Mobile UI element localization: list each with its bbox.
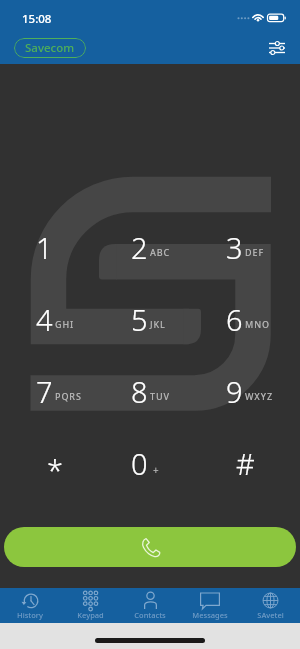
staticText: 6 bbox=[226, 300, 243, 339]
button[interactable]: SAvetel bbox=[240, 588, 300, 623]
staticText: JKL bbox=[150, 318, 166, 330]
button[interactable]: # bbox=[198, 427, 293, 499]
staticText: 2 bbox=[131, 228, 148, 267]
staticText: 1 bbox=[36, 228, 53, 267]
staticText: 9 bbox=[226, 372, 243, 411]
button[interactable]: 8 bbox=[103, 355, 198, 427]
button[interactable]: 5 bbox=[103, 283, 198, 355]
button[interactable]: 7 bbox=[7, 355, 103, 427]
staticText: GHI bbox=[55, 318, 75, 330]
button[interactable]: Keypad bbox=[60, 588, 120, 623]
staticText: 3 bbox=[226, 228, 243, 267]
staticText: DEF bbox=[245, 246, 265, 258]
staticText: PQRS bbox=[55, 390, 82, 402]
staticText: 5 bbox=[131, 300, 148, 339]
staticText: 8 bbox=[131, 372, 148, 411]
staticText: * bbox=[47, 450, 63, 489]
staticText: Messages bbox=[192, 610, 228, 620]
staticText: # bbox=[236, 444, 255, 483]
button[interactable]: * bbox=[7, 427, 103, 499]
button[interactable]: Contacts bbox=[120, 588, 180, 623]
staticText: TUV bbox=[150, 390, 170, 402]
button[interactable]: 3 bbox=[198, 211, 293, 283]
staticText: 15:08 bbox=[22, 11, 52, 27]
staticText: + bbox=[153, 463, 159, 477]
staticText: Savecom bbox=[25, 40, 75, 56]
button[interactable]: Savecom bbox=[14, 38, 86, 58]
button[interactable]: Settings bbox=[260, 32, 294, 64]
staticText: 0 bbox=[131, 444, 148, 483]
button[interactable]: 2 bbox=[103, 211, 198, 283]
button[interactable]: 9 bbox=[198, 355, 293, 427]
staticText: SAvetel bbox=[257, 610, 284, 620]
staticText: MNO bbox=[245, 318, 271, 330]
button[interactable]: Messages bbox=[180, 588, 240, 623]
button[interactable]: 6 bbox=[198, 283, 293, 355]
staticText: 7 bbox=[36, 372, 53, 411]
staticText: History bbox=[17, 610, 43, 620]
staticText: WXYZ bbox=[245, 390, 273, 402]
staticText: 4 bbox=[36, 300, 53, 339]
staticText: Contacts bbox=[134, 610, 166, 620]
button[interactable]: 0 bbox=[103, 427, 198, 499]
button[interactable]: Call bbox=[4, 527, 296, 567]
button[interactable]: 1 bbox=[7, 211, 103, 283]
staticText: Keypad bbox=[77, 610, 104, 620]
button[interactable]: 4 bbox=[7, 283, 103, 355]
button[interactable]: History bbox=[0, 588, 60, 623]
staticText: ABC bbox=[150, 246, 171, 258]
